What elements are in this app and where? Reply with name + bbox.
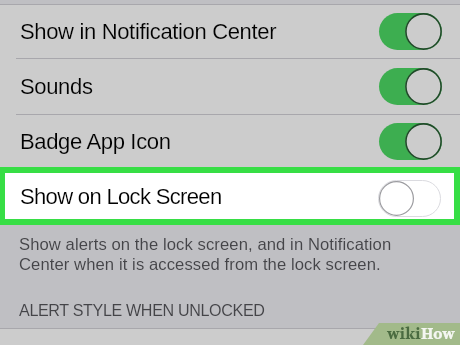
staticText: Show on Lock Screen <box>20 184 222 209</box>
staticText: Sounds <box>20 74 93 99</box>
button[interactable]: Sounds <box>0 59 460 114</box>
staticText: Show alerts on the lock screen, and in N… <box>19 235 392 274</box>
button[interactable]: Switch off <box>378 180 441 217</box>
staticText: Badge App Icon <box>20 129 171 154</box>
staticText: wiki <box>387 324 421 344</box>
button[interactable]: Switch on <box>379 13 442 50</box>
staticText: ALERT STYLE WHEN UNLOCKED <box>19 301 265 319</box>
button[interactable]: Show on Lock Screen <box>5 173 454 219</box>
button[interactable]: Switch on <box>379 68 442 105</box>
button[interactable]: Switch on <box>379 123 442 160</box>
staticText: How <box>421 324 455 344</box>
button[interactable]: Show in Notification Center <box>0 5 460 58</box>
button[interactable]: Badge App Icon <box>0 115 460 168</box>
staticText: Show in Notification Center <box>20 19 277 44</box>
